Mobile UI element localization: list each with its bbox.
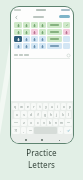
button[interactable]: More options — [67, 54, 70, 57]
staticText: d — [30, 113, 32, 117]
button[interactable]: Letter tile — [39, 29, 46, 35]
button[interactable]: Back — [24, 138, 28, 142]
staticText: o — [63, 105, 65, 109]
button[interactable]: Word tile — [47, 29, 62, 35]
button[interactable]: Word tile — [47, 36, 62, 42]
staticText: w — [20, 105, 23, 109]
button[interactable]: Enter — [64, 127, 72, 134]
staticText: k — [62, 113, 64, 117]
staticText: b — [49, 121, 51, 125]
button[interactable]: Letter tile — [31, 29, 38, 35]
button[interactable]: Key — [12, 119, 20, 126]
button[interactable]: s — [21, 111, 27, 118]
button[interactable]: Tile — [63, 36, 70, 42]
button[interactable]: u — [49, 103, 54, 110]
button[interactable]: i — [55, 103, 60, 110]
button[interactable]: l — [66, 111, 71, 118]
button[interactable]: Letter tile — [31, 36, 38, 42]
staticText: s — [23, 113, 25, 117]
button[interactable]: q — [12, 103, 18, 110]
button[interactable]: Tile — [63, 22, 70, 28]
staticText: m — [60, 121, 63, 125]
button[interactable]: Letter tile — [39, 43, 46, 49]
button[interactable]: r — [31, 103, 36, 110]
button[interactable]: Letter tile — [14, 29, 22, 35]
button[interactable] — [14, 54, 29, 56]
button[interactable]: Letter tile — [23, 36, 30, 42]
button[interactable]: Letter tile — [39, 22, 46, 28]
staticText: v — [43, 121, 45, 125]
staticText: Practice — [26, 147, 57, 158]
staticText: n — [55, 121, 57, 125]
button[interactable]: Tile — [63, 43, 70, 49]
button[interactable]: Letter tile — [23, 29, 30, 35]
button[interactable]: Letter tile — [23, 22, 30, 28]
button[interactable]: Letter tile — [14, 36, 22, 42]
staticText: j — [56, 113, 57, 117]
button[interactable]: Tile — [63, 29, 70, 35]
staticText: Letters — [28, 159, 55, 170]
button[interactable]: Letter tile — [14, 43, 22, 49]
button[interactable]: t — [37, 103, 42, 110]
button[interactable]: v — [41, 119, 46, 126]
staticText: ?1 — [14, 129, 18, 133]
button[interactable]: Letter tile — [31, 22, 38, 28]
button[interactable]: h — [48, 111, 53, 118]
button[interactable]: k — [60, 111, 65, 118]
staticText: . — [60, 129, 61, 133]
button[interactable]: ?1 — [12, 127, 20, 134]
staticText: u — [51, 105, 53, 109]
staticText: l — [68, 113, 69, 117]
button[interactable]: x — [28, 119, 34, 126]
staticText: t — [39, 105, 41, 109]
staticText: a — [16, 113, 18, 117]
button[interactable]: z — [21, 119, 27, 126]
staticText: p — [69, 105, 71, 109]
button[interactable]: o — [61, 103, 66, 110]
button[interactable]: c — [35, 119, 40, 126]
button[interactable]: Key — [27, 127, 33, 134]
button[interactable]: j — [54, 111, 59, 118]
staticText: h — [50, 113, 52, 117]
staticText: c — [37, 121, 39, 125]
staticText: y — [45, 105, 47, 109]
button[interactable]: m — [59, 119, 64, 126]
button[interactable]: Back — [14, 15, 18, 19]
staticText: e — [27, 105, 29, 109]
button[interactable]: Letter tile — [23, 43, 30, 49]
button[interactable]: Letter tile — [39, 36, 46, 42]
button[interactable]: Action — [59, 15, 70, 18]
staticText: q — [14, 105, 16, 109]
button[interactable]: e — [25, 103, 30, 110]
button[interactable]: p — [67, 103, 72, 110]
button[interactable]: , — [21, 127, 26, 134]
staticText: f — [37, 113, 39, 117]
button[interactable]: b — [47, 119, 52, 126]
button[interactable]: a — [14, 111, 20, 118]
staticText: r — [33, 105, 35, 109]
button[interactable]: Word tile — [47, 22, 62, 28]
staticText: g — [44, 113, 46, 117]
button[interactable]: Recents — [57, 138, 61, 142]
button[interactable]: Home — [40, 138, 44, 142]
staticText: x — [30, 121, 32, 125]
button[interactable]: y — [43, 103, 48, 110]
button[interactable]: Key — [65, 119, 72, 126]
button[interactable]: f — [35, 111, 41, 118]
button[interactable]: Letter tile — [31, 43, 38, 49]
staticText: i — [57, 105, 58, 109]
staticText: , — [23, 129, 24, 133]
button[interactable]: w — [19, 103, 24, 110]
button[interactable]: Word tile — [47, 43, 62, 49]
button[interactable]: Letter tile — [14, 22, 22, 28]
button[interactable]: . — [58, 127, 63, 134]
button[interactable]: n — [53, 119, 58, 126]
button[interactable]: d — [28, 111, 34, 118]
staticText: z — [23, 121, 25, 125]
button[interactable]: g — [42, 111, 47, 118]
